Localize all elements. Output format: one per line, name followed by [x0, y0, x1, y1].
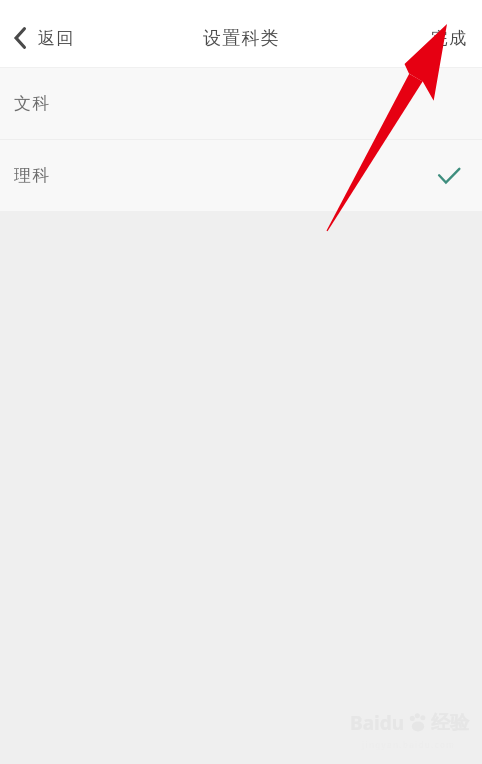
- other: 返回: [14, 27, 27, 49]
- staticText: 经验: [431, 711, 469, 735]
- staticText: 理科: [14, 165, 51, 186]
- other: 已选择: [438, 167, 460, 185]
- button[interactable]: 文科: [0, 68, 482, 139]
- staticText: 返回: [38, 28, 75, 49]
- staticText: 文科: [14, 93, 51, 114]
- staticText: Baidu: [350, 710, 405, 736]
- staticText: 设置科类: [203, 27, 280, 50]
- button[interactable]: 完成: [417, 18, 482, 59]
- button[interactable]: 返回: [0, 19, 91, 57]
- staticText: 完成: [431, 28, 468, 49]
- button[interactable]: 理科: [0, 140, 482, 211]
